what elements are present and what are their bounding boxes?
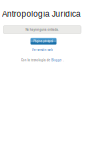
button[interactable]: Página principal [30,38,56,45]
staticText: . [63,59,64,62]
staticText: Antropología Jurídica [2,9,81,19]
staticText: Página principal [33,40,54,43]
staticText: Con la tecnología de [21,59,51,62]
button[interactable]: Blogger [51,59,62,62]
staticText: Blogger [51,59,62,62]
staticText: Ver versión web [32,48,53,51]
button[interactable]: Ver versión web [0,48,85,52]
staticText: No hay ninguna entrada. [25,28,59,31]
